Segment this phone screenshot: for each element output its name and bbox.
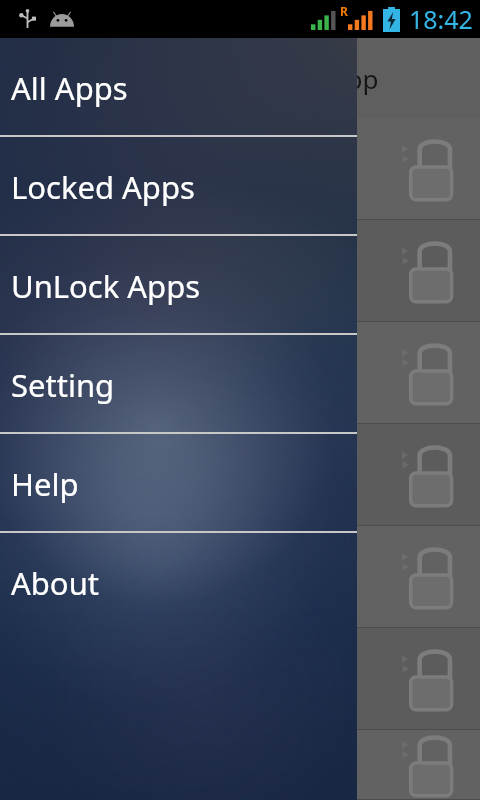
staticText: App (330, 61, 379, 96)
button[interactable]: Unlocked (0, 628, 480, 730)
button[interactable]: Unlocked (402, 236, 464, 306)
button[interactable]: Unlocked (402, 542, 464, 612)
button[interactable]: All Apps (0, 38, 357, 137)
button[interactable]: Unlocked (0, 526, 480, 628)
button[interactable]: Unlocked (402, 730, 464, 800)
staticText: Help (11, 463, 79, 505)
button[interactable]: Locked Apps (0, 137, 357, 236)
staticText: Setting (11, 364, 115, 406)
staticText: R (340, 3, 348, 19)
staticText: 18:42 (409, 2, 473, 36)
button[interactable]: App (0, 38, 480, 118)
button[interactable]: Unlocked (0, 730, 480, 800)
button[interactable]: Unlocked (0, 220, 480, 322)
button[interactable]: Unlocked (0, 424, 480, 526)
button[interactable]: Unlocked (0, 118, 480, 220)
staticText: All Apps (11, 67, 128, 109)
staticText: Locked Apps (11, 166, 195, 208)
button[interactable]: Setting (0, 335, 357, 434)
button[interactable]: Unlocked (402, 338, 464, 408)
staticText: UnLock Apps (11, 265, 201, 307)
button[interactable]: Unlocked (402, 440, 464, 510)
button[interactable]: Unlocked (402, 134, 464, 204)
button[interactable]: About (0, 533, 357, 632)
button[interactable]: Help (0, 434, 357, 533)
button[interactable]: Unlocked (402, 644, 464, 714)
button[interactable]: Unlocked (0, 322, 480, 424)
staticText: About (11, 562, 99, 604)
button[interactable]: UnLock Apps (0, 236, 357, 335)
